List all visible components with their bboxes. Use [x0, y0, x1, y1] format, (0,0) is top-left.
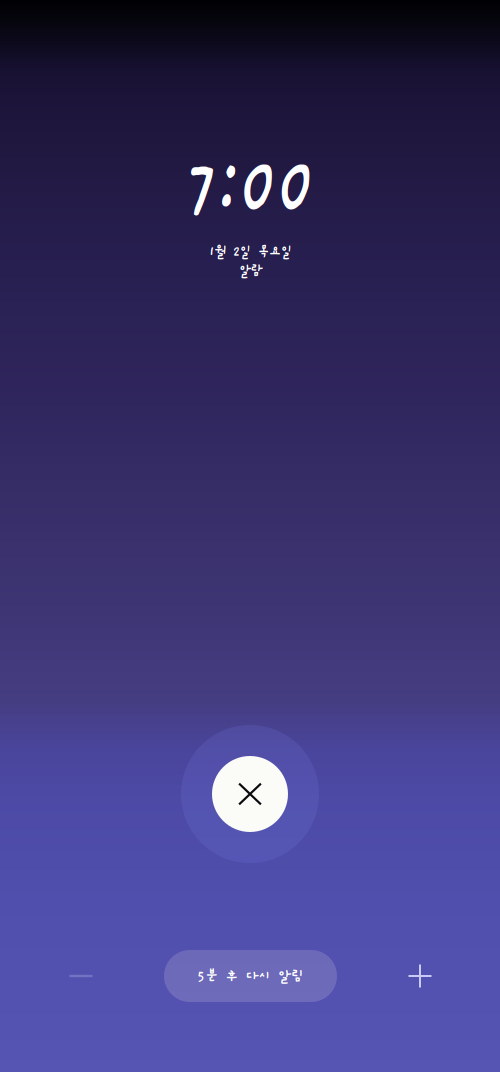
button[interactable]: 소리 줄이기: [58, 953, 104, 999]
button[interactable]: 5분 후 다시 알림: [164, 950, 337, 1002]
staticText: 1월 2일 목요일: [203, 243, 297, 259]
staticText: 알람: [237, 262, 263, 278]
button[interactable]: 알람 끄기: [181, 725, 319, 863]
staticText: 5분 후 다시 알림: [197, 968, 304, 984]
staticText: 7:00: [160, 143, 339, 233]
button[interactable]: 소리 키우기: [397, 953, 443, 999]
